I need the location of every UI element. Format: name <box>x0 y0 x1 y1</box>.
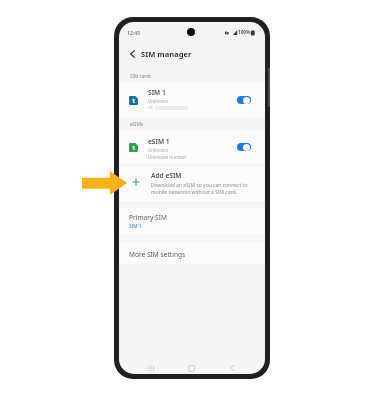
button[interactable]: Navigate up <box>127 48 137 60</box>
staticText: More SIM settings <box>129 250 186 259</box>
button[interactable]: Add eSIM <box>119 167 265 201</box>
staticText: Download an eSIM so you can connect to m… <box>151 182 248 196</box>
button[interactable]: More SIM settings <box>119 243 265 264</box>
staticText: 1 <box>132 144 136 151</box>
staticText: Primary SIM <box>129 213 167 222</box>
button[interactable]: Home <box>185 362 197 374</box>
staticText: SIM 1 <box>148 88 166 97</box>
staticText: SIM cards <box>130 73 152 79</box>
button[interactable]: Primary SIM <box>119 208 265 235</box>
staticText: 12:45 <box>127 29 141 36</box>
staticText: eSIMs <box>130 121 144 127</box>
button[interactable]: Toggle SIM <box>237 143 251 151</box>
staticText: SIM manager <box>141 49 192 59</box>
staticText: Add eSIM <box>151 171 182 180</box>
staticText: Unknown <box>148 147 169 153</box>
staticText: 100% <box>238 29 251 35</box>
button[interactable]: 1 <box>119 131 265 163</box>
button[interactable]: 1 <box>119 82 265 118</box>
staticText: Unknown number <box>148 154 187 160</box>
staticText: +1 <box>148 105 154 111</box>
staticText: Unknown <box>148 98 169 104</box>
button[interactable]: Toggle SIM <box>237 96 251 104</box>
button[interactable]: Back <box>226 362 238 374</box>
staticText: SIM 1 <box>129 223 142 230</box>
staticText: 1 <box>132 97 136 104</box>
staticText: eSIM 1 <box>148 137 170 146</box>
button[interactable]: Recents <box>145 362 157 374</box>
